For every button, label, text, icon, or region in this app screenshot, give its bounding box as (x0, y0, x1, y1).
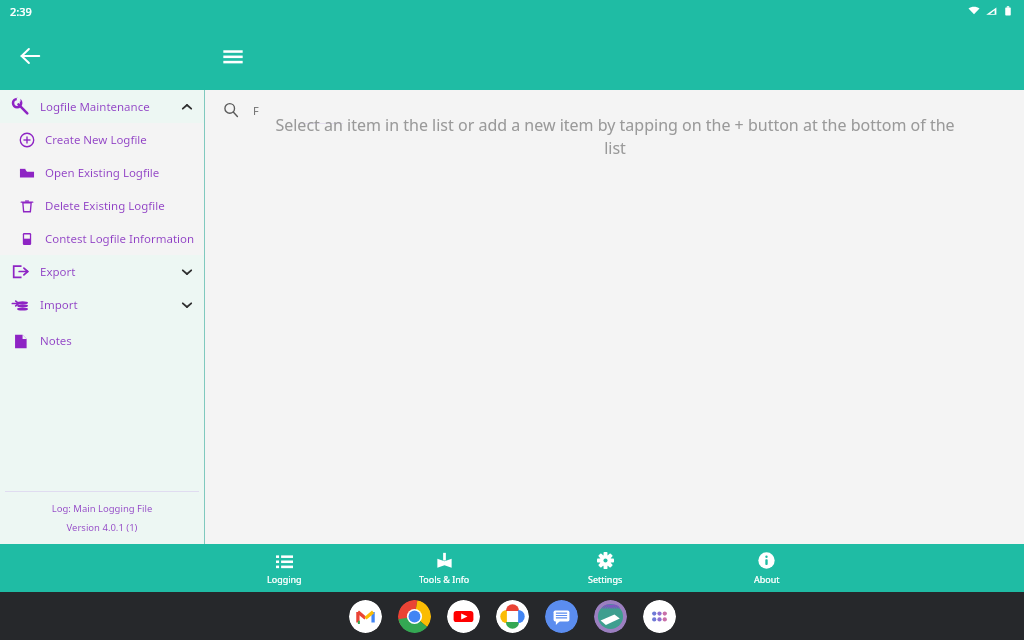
other: Search (223, 102, 239, 118)
button[interactable]: App (398, 600, 431, 633)
staticText: Import (40, 297, 78, 313)
button[interactable]: App (349, 600, 382, 633)
button[interactable]: Settings (525, 544, 686, 592)
button[interactable]: Import (0, 288, 204, 321)
button[interactable]: Menu (211, 34, 255, 78)
button[interactable]: Logfile Maintenance (0, 90, 204, 123)
staticText: Select an item in the list or add a new … (267, 114, 963, 159)
button[interactable]: App (594, 600, 627, 633)
button[interactable]: Export (0, 255, 204, 288)
staticText: Export (40, 264, 76, 280)
button[interactable]: Contest Logfile Information (0, 222, 204, 255)
staticText: Logging (267, 573, 302, 585)
button[interactable]: App (545, 600, 578, 633)
staticText: About (754, 573, 780, 585)
button[interactable]: App (496, 600, 529, 633)
button[interactable]: Notes (0, 321, 204, 361)
staticText: Version 4.0.1 (1) (0, 521, 204, 534)
staticText: Tools & Info (419, 573, 470, 585)
button[interactable]: Logging (204, 544, 364, 592)
staticText: Log: Main Logging File (0, 502, 204, 515)
staticText: F (253, 103, 259, 118)
staticText: Delete Existing Logfile (45, 198, 165, 214)
staticText: Open Existing Logfile (45, 165, 160, 181)
button[interactable]: About (686, 544, 847, 592)
button[interactable]: Delete Existing Logfile (0, 189, 204, 222)
button[interactable]: App (447, 600, 480, 633)
button[interactable]: Back (8, 34, 52, 78)
button[interactable]: App (643, 600, 676, 633)
button[interactable]: Open Existing Logfile (0, 156, 204, 189)
staticText: Notes (40, 333, 72, 349)
staticText: Create New Logfile (45, 132, 147, 148)
staticText: 2:39 (10, 4, 32, 19)
staticText: Logfile Maintenance (40, 99, 150, 115)
staticText: Contest Logfile Information (45, 231, 195, 247)
button[interactable]: Tools & Info (364, 544, 525, 592)
staticText: Settings (588, 573, 623, 585)
button[interactable]: Create New Logfile (0, 123, 204, 156)
